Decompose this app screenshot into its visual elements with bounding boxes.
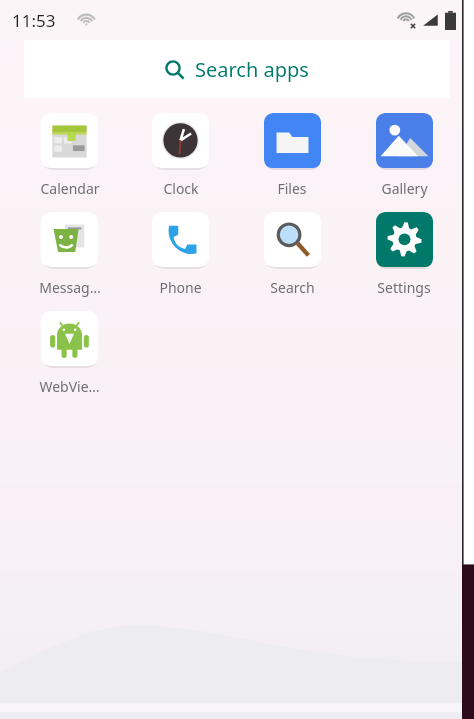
staticText: Calendar: [40, 179, 100, 198]
staticText: Messag…: [39, 278, 101, 297]
button[interactable]: Phone: [125, 205, 236, 304]
button[interactable]: Settings: [348, 205, 460, 304]
staticText: Clock: [163, 179, 199, 198]
button[interactable]: Search apps: [24, 40, 450, 98]
button[interactable]: Clock: [125, 106, 236, 205]
staticText: Gallery: [381, 179, 428, 198]
button[interactable]: Messag…: [14, 205, 125, 304]
button[interactable]: Search: [236, 205, 348, 304]
staticText: Files: [277, 179, 307, 198]
button[interactable]: WebVie…: [14, 304, 125, 403]
staticText: Settings: [377, 278, 431, 297]
staticText: Phone: [159, 278, 202, 297]
button[interactable]: Files: [236, 106, 348, 205]
button[interactable]: Calendar: [14, 106, 125, 205]
staticText: Search: [270, 278, 315, 297]
staticText: WebVie…: [39, 377, 100, 396]
button[interactable]: Gallery: [348, 106, 460, 205]
staticText: 11:53: [12, 9, 56, 32]
staticText: Search apps: [195, 56, 309, 83]
